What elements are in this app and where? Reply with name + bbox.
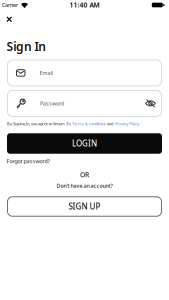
staticText: LOGIN: [72, 138, 97, 149]
staticText: Forgot password?: [6, 158, 49, 165]
button[interactable]: SIGN UP: [7, 196, 162, 217]
staticText: Password: [40, 100, 64, 107]
staticText: SIGN UP: [68, 201, 100, 212]
staticText: 11:40 AM: [69, 1, 99, 9]
staticText: Email: [39, 69, 52, 76]
staticText: By Signing In, you agree to Venom 3's: [7, 121, 72, 126]
staticText: Privacy Policy: [115, 121, 139, 126]
staticText: Terms & conditions: [72, 121, 106, 126]
button[interactable]: Password: [7, 90, 162, 117]
staticText: Don't have an account?: [56, 182, 112, 189]
button[interactable]: Show password: [145, 99, 156, 108]
button[interactable]: Forgot password?: [0, 154, 49, 165]
button[interactable]: Privacy Policy: [115, 121, 139, 126]
button[interactable]: Terms & conditions: [72, 121, 106, 126]
button[interactable]: Close: [0, 10, 12, 22]
button[interactable]: Email: [7, 59, 162, 86]
staticText: Carrier: [2, 1, 18, 9]
staticText: OR: [80, 170, 89, 179]
button[interactable]: LOGIN: [7, 133, 162, 154]
staticText: and: [106, 121, 114, 126]
staticText: Sign In: [6, 38, 46, 54]
